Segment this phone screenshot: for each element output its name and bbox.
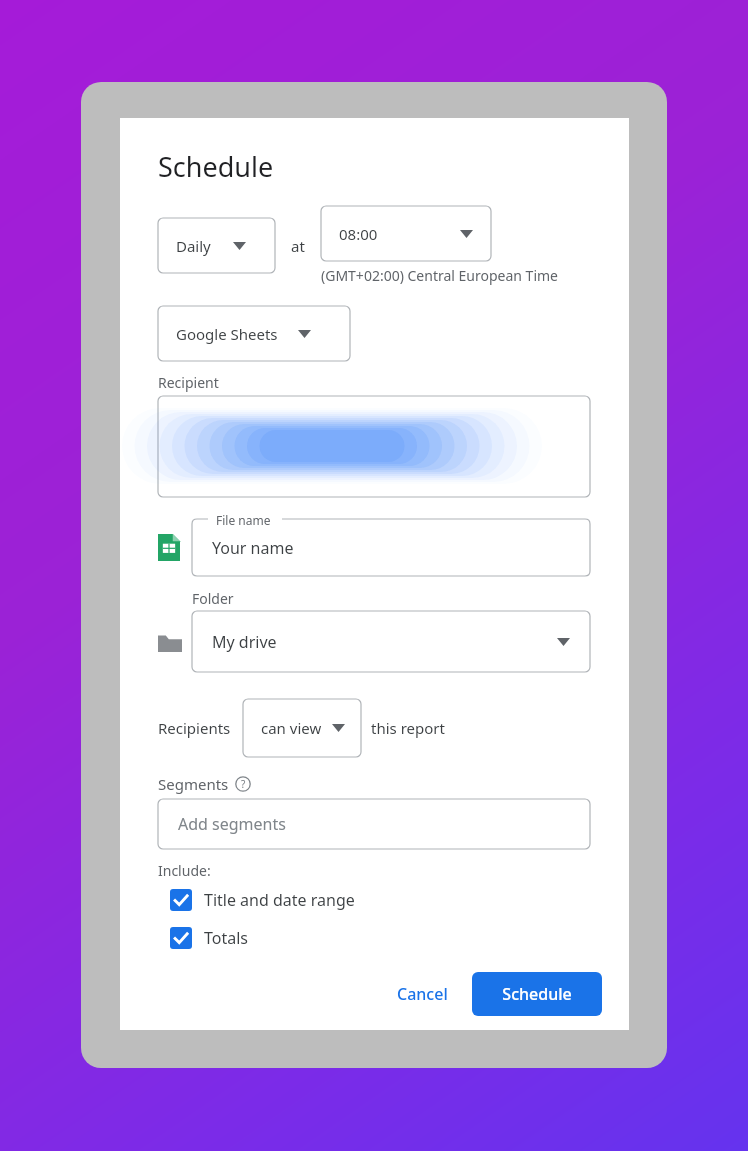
staticText: Add segments bbox=[178, 813, 286, 835]
button[interactable]: Help about segments bbox=[235, 776, 251, 792]
staticText: Recipient bbox=[158, 373, 219, 392]
staticText: Title and date range bbox=[204, 889, 355, 911]
staticText: this report bbox=[371, 718, 445, 738]
button[interactable]: Daily bbox=[158, 218, 275, 273]
staticText: My drive bbox=[212, 631, 277, 653]
staticText: 08:00 bbox=[339, 224, 378, 244]
button[interactable]: My drive bbox=[192, 611, 590, 672]
staticText: Cancel bbox=[397, 983, 448, 1005]
staticText: can view bbox=[261, 718, 322, 738]
staticText: Schedule bbox=[158, 148, 274, 185]
button[interactable]: Totals bbox=[170, 922, 249, 954]
staticText: ? bbox=[241, 777, 246, 791]
staticText: Daily bbox=[176, 236, 211, 256]
staticText: (GMT+02:00) Central European Time bbox=[321, 266, 559, 285]
button[interactable]: can view bbox=[243, 699, 361, 757]
staticText: Include: bbox=[158, 861, 211, 880]
button[interactable]: 08:00 bbox=[321, 206, 491, 261]
staticText: Folder bbox=[192, 589, 234, 608]
staticText: Schedule bbox=[502, 983, 572, 1005]
staticText: Totals bbox=[204, 927, 249, 949]
staticText: Segments bbox=[158, 774, 229, 794]
button[interactable]: Add segments bbox=[158, 799, 590, 849]
button[interactable]: Google Sheets bbox=[158, 306, 350, 361]
staticText: Recipients bbox=[158, 718, 231, 738]
button[interactable]: Title and date range bbox=[170, 884, 355, 916]
staticText: Google Sheets bbox=[176, 324, 278, 344]
button[interactable]: Cancel bbox=[387, 975, 458, 1013]
staticText: Your name bbox=[212, 537, 294, 559]
button[interactable] bbox=[158, 396, 590, 497]
button[interactable]: Schedule bbox=[472, 972, 602, 1016]
staticText: at bbox=[291, 236, 305, 256]
staticText: File name bbox=[216, 512, 271, 528]
